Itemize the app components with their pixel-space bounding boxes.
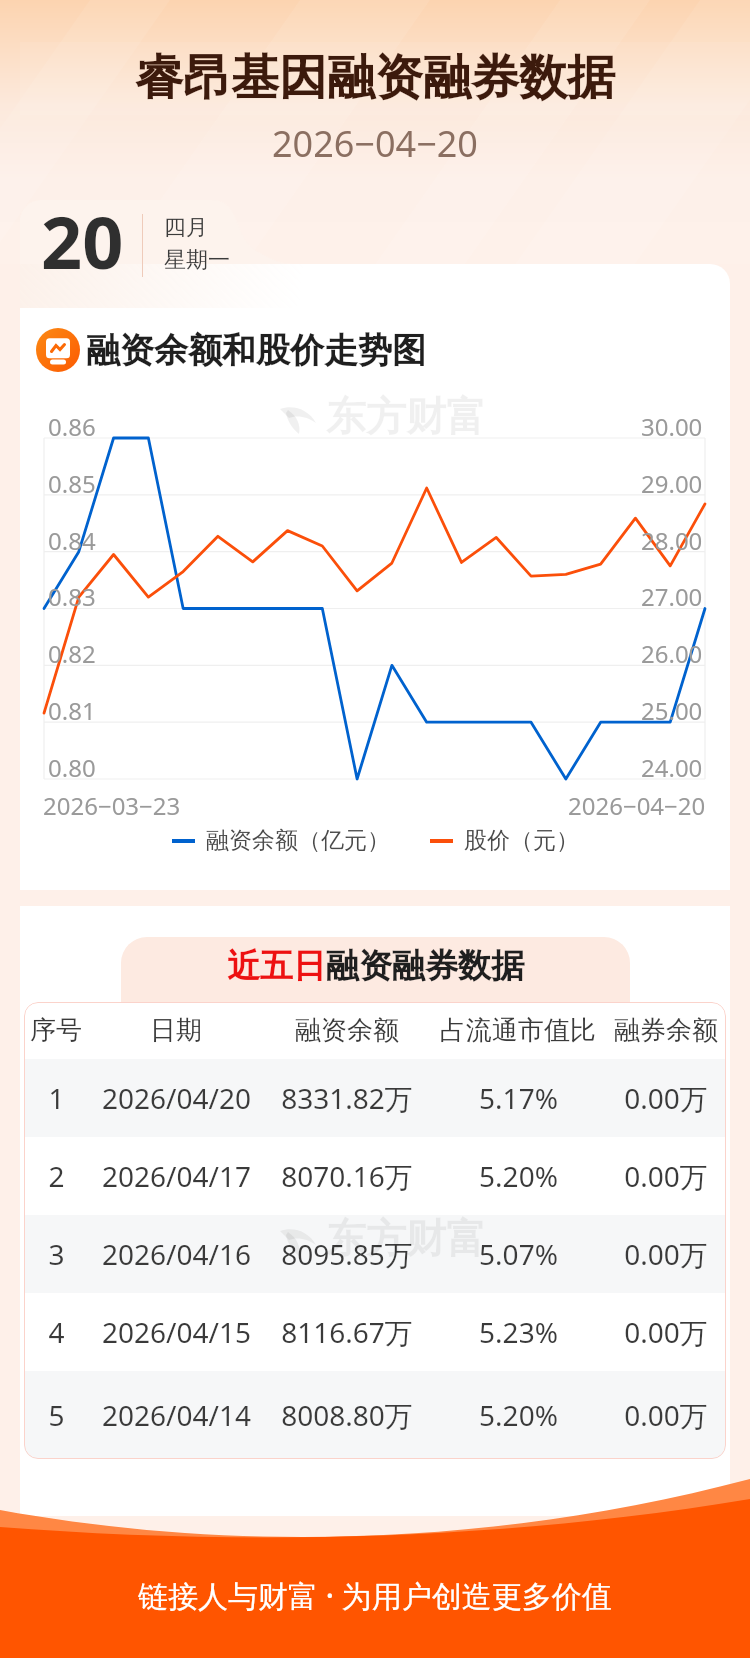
staticText: 四月 bbox=[164, 214, 208, 242]
button[interactable]: 3 bbox=[24, 1215, 726, 1293]
staticText: 30.00 bbox=[641, 410, 703, 443]
button[interactable]: 序号 bbox=[24, 1002, 726, 1059]
staticText: 0.86 bbox=[48, 410, 96, 443]
button[interactable]: 4 bbox=[24, 1293, 726, 1371]
staticText: 5 bbox=[48, 1396, 65, 1434]
staticText: 8070.16万 bbox=[281, 1157, 413, 1195]
staticText: 0.00万 bbox=[624, 1157, 708, 1195]
staticText: 28.00 bbox=[641, 524, 703, 557]
staticText: 27.00 bbox=[641, 580, 703, 613]
staticText: 0.00万 bbox=[624, 1079, 708, 1117]
staticText: 2 bbox=[48, 1157, 65, 1195]
staticText: 5.23% bbox=[479, 1313, 558, 1351]
staticText: 0.80 bbox=[48, 751, 96, 784]
staticText: 星期一 bbox=[164, 246, 230, 274]
staticText: 2026/04/20 bbox=[102, 1079, 251, 1117]
staticText: 0.82 bbox=[48, 637, 96, 670]
staticText: 0.00万 bbox=[624, 1396, 708, 1434]
staticText: 融资余额和股价走势图 bbox=[86, 329, 426, 372]
staticText: 5.07% bbox=[479, 1235, 558, 1273]
staticText: 2026/04/17 bbox=[102, 1157, 251, 1195]
staticText: 近五日 bbox=[227, 945, 326, 987]
staticText: 链接人与财富 · 为用户创造更多价值 bbox=[138, 1575, 612, 1616]
staticText: 融资余额 bbox=[295, 1014, 399, 1047]
button[interactable]: 2 bbox=[24, 1137, 726, 1215]
staticText: 股价（元） bbox=[464, 826, 579, 855]
staticText: 0.81 bbox=[48, 694, 96, 727]
staticText: 融资融券数据 bbox=[326, 945, 524, 987]
button[interactable]: 融资余额和股价走势图 bbox=[36, 328, 426, 372]
staticText: 2026/04/15 bbox=[102, 1313, 251, 1351]
staticText: 4 bbox=[48, 1313, 65, 1351]
button[interactable]: 5 bbox=[24, 1371, 726, 1459]
staticText: 2026−03−23 bbox=[43, 789, 181, 822]
staticText: 5.20% bbox=[479, 1396, 558, 1434]
staticText: 24.00 bbox=[641, 751, 703, 784]
staticText: 3 bbox=[48, 1235, 65, 1273]
button[interactable]: 1 bbox=[24, 1059, 726, 1137]
staticText: 8095.85万 bbox=[281, 1235, 413, 1273]
staticText: 20 bbox=[41, 192, 124, 290]
staticText: 日期 bbox=[150, 1014, 202, 1047]
staticText: 2026−04−20 bbox=[568, 789, 706, 822]
staticText: 26.00 bbox=[641, 637, 703, 670]
staticText: 睿昂基因融资融券数据 bbox=[135, 48, 615, 108]
staticText: 0.00万 bbox=[624, 1235, 708, 1273]
staticText: 8116.67万 bbox=[281, 1313, 413, 1351]
staticText: 0.00万 bbox=[624, 1313, 708, 1351]
staticText: 5.17% bbox=[479, 1079, 558, 1117]
staticText: 0.85 bbox=[48, 467, 96, 500]
staticText: 序号 bbox=[30, 1014, 82, 1047]
staticText: 8331.82万 bbox=[281, 1079, 413, 1117]
staticText: 东方财富 bbox=[326, 1213, 486, 1263]
button[interactable]: 近五日 bbox=[227, 945, 524, 987]
staticText: 0.84 bbox=[48, 524, 96, 557]
staticText: 占流通市值比 bbox=[440, 1014, 596, 1047]
staticText: 东方财富 bbox=[326, 391, 486, 441]
staticText: 2026−04−20 bbox=[272, 119, 478, 168]
staticText: 29.00 bbox=[641, 467, 703, 500]
staticText: 融资余额（亿元） bbox=[206, 826, 390, 855]
staticText: 8008.80万 bbox=[281, 1396, 413, 1434]
staticText: 25.00 bbox=[641, 694, 703, 727]
staticText: 融券余额 bbox=[614, 1014, 718, 1047]
staticText: 2026/04/14 bbox=[102, 1396, 251, 1434]
staticText: 2026/04/16 bbox=[102, 1235, 251, 1273]
staticText: 1 bbox=[48, 1079, 65, 1117]
staticText: 0.83 bbox=[48, 580, 96, 613]
staticText: 5.20% bbox=[479, 1157, 558, 1195]
